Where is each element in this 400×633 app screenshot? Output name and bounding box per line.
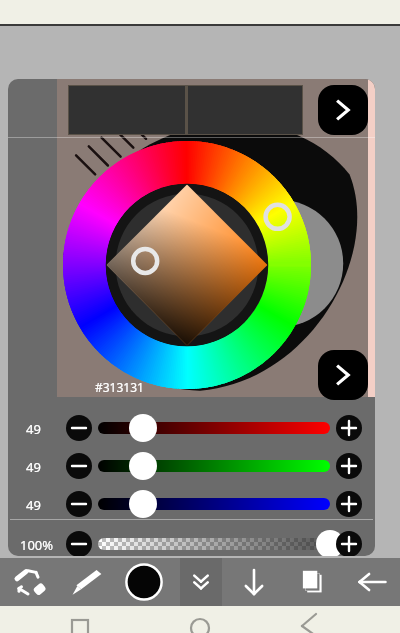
- button[interactable]: Layers 3: [288, 558, 336, 606]
- button[interactable]: Decrease: [66, 491, 92, 517]
- button[interactable]: Increase: [336, 453, 362, 479]
- button[interactable]: Increase: [336, 491, 362, 517]
- button[interactable]: Collapse: [180, 558, 222, 606]
- button[interactable]: Back: [348, 558, 396, 606]
- button[interactable]: Next swatches: [318, 350, 368, 400]
- button[interactable]: Decrease: [66, 531, 92, 556]
- staticText: 49: [26, 420, 41, 438]
- button[interactable]: [98, 498, 330, 510]
- button[interactable]: Next palette: [318, 85, 368, 135]
- button[interactable]: [98, 538, 330, 550]
- staticText: 49: [26, 496, 41, 514]
- staticText: #313131: [95, 379, 144, 395]
- button[interactable]: Download: [230, 558, 278, 606]
- button[interactable]: Decrease: [66, 453, 92, 479]
- button[interactable]: Brush: [62, 558, 110, 606]
- button[interactable]: [98, 460, 330, 472]
- button[interactable]: [68, 85, 303, 135]
- button[interactable]: Increase: [336, 415, 362, 441]
- staticText: 100%: [20, 536, 54, 554]
- button[interactable]: [98, 422, 330, 434]
- button[interactable]: Undo redo: [8, 558, 58, 606]
- button[interactable]: Increase: [336, 531, 362, 556]
- staticText: 49: [26, 458, 41, 476]
- button[interactable]: [129, 490, 157, 518]
- button[interactable]: Decrease: [66, 415, 92, 441]
- button[interactable]: Brush size 110.0: [118, 558, 170, 606]
- button[interactable]: [129, 452, 157, 480]
- button[interactable]: [316, 530, 344, 556]
- button[interactable]: [129, 414, 157, 442]
